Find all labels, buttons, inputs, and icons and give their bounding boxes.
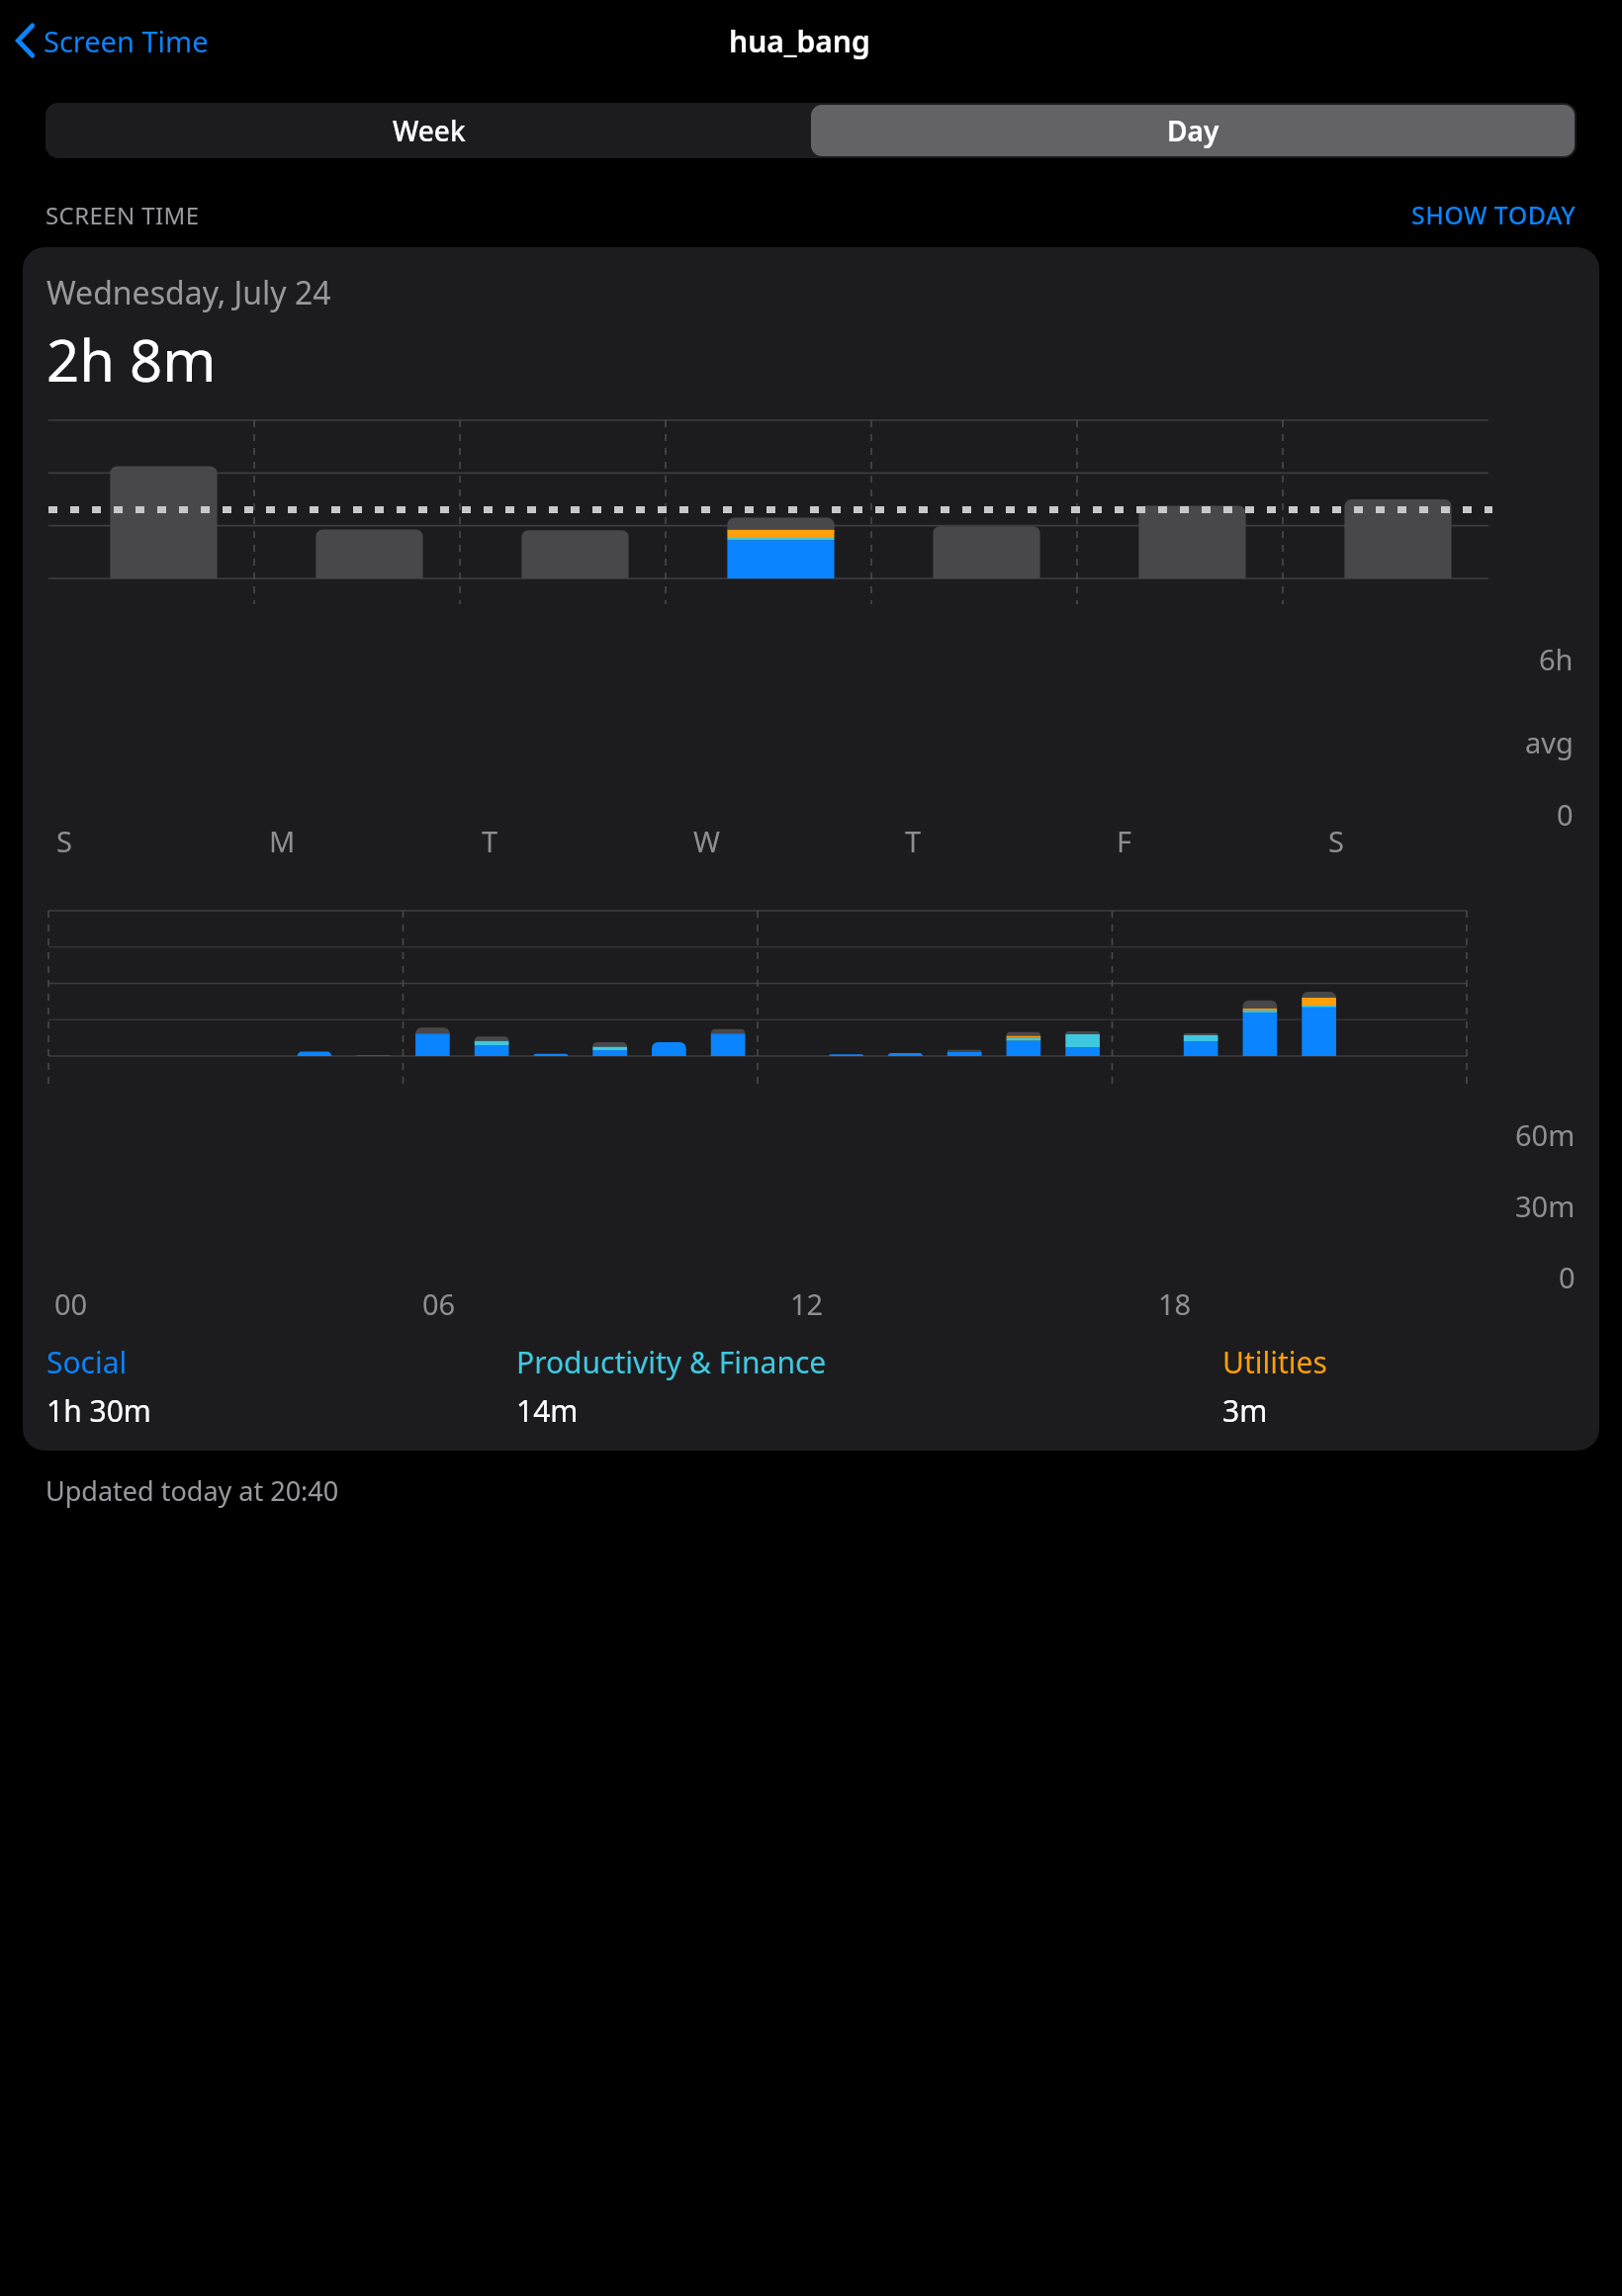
staticText: SCREEN TIME [45, 199, 200, 231]
staticText: Updated today at 20:40 [45, 1472, 339, 1509]
staticText: 6h [1539, 640, 1574, 678]
staticText: Screen Time [44, 22, 209, 60]
staticText: Week [393, 112, 466, 149]
staticText: M [269, 822, 296, 860]
staticText: S [56, 822, 72, 860]
staticText: 14m [516, 1390, 579, 1431]
staticText: hua_bang [729, 21, 870, 61]
staticText: 00 [54, 1284, 88, 1323]
staticText: Day [1167, 112, 1219, 149]
staticText: S [1328, 822, 1344, 860]
staticText: Utilities [1222, 1342, 1327, 1382]
staticText: 18 [1158, 1284, 1192, 1323]
staticText: Productivity & Finance [516, 1342, 827, 1382]
staticText: Wednesday, July 24 [46, 271, 331, 314]
staticText: T [482, 822, 498, 860]
staticText: 06 [422, 1284, 456, 1323]
staticText: Social [46, 1342, 128, 1382]
staticText: 0 [1559, 1258, 1576, 1296]
button[interactable]: SHOW TODAY [1411, 198, 1577, 231]
staticText: SHOW TODAY [1411, 198, 1577, 231]
staticText: W [693, 822, 720, 860]
button[interactable]: Day [811, 105, 1575, 156]
staticText: 3m [1222, 1390, 1268, 1431]
button[interactable]: Wednesday, July 24 [23, 247, 1599, 1451]
staticText: F [1117, 822, 1132, 860]
button[interactable]: Week [47, 105, 811, 156]
staticText: 30m [1515, 1187, 1576, 1225]
staticText: 1h 30m [46, 1390, 151, 1431]
staticText: 12 [790, 1284, 824, 1323]
staticText: 60m [1515, 1115, 1576, 1154]
button[interactable]: Productivity & Finance [516, 1342, 1222, 1431]
button[interactable]: Utilities [1222, 1342, 1576, 1431]
button[interactable]: Screen Time [10, 17, 213, 64]
staticText: 2h 8m [46, 320, 217, 398]
staticText: 0 [1557, 795, 1574, 834]
staticText: avg [1525, 723, 1574, 761]
staticText: T [905, 822, 922, 860]
button[interactable]: Social [46, 1342, 516, 1431]
